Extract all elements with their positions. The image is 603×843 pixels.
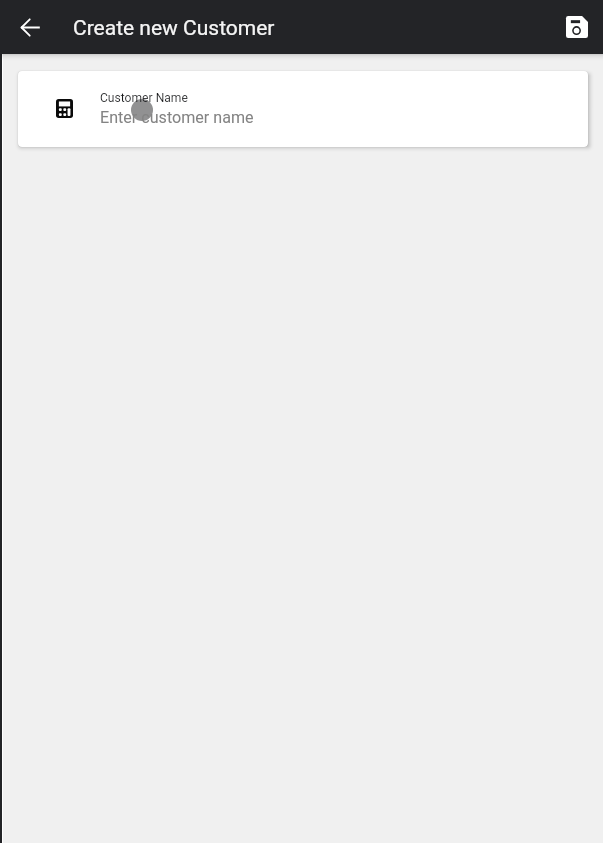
staticText: Customer Name — [100, 91, 188, 105]
staticText: Enter customer name — [100, 108, 254, 127]
button[interactable]: Customer Name — [18, 71, 588, 147]
button[interactable]: Save — [560, 10, 594, 44]
staticText: Create new Customer — [73, 16, 275, 41]
button[interactable]: Back — [13, 10, 47, 44]
